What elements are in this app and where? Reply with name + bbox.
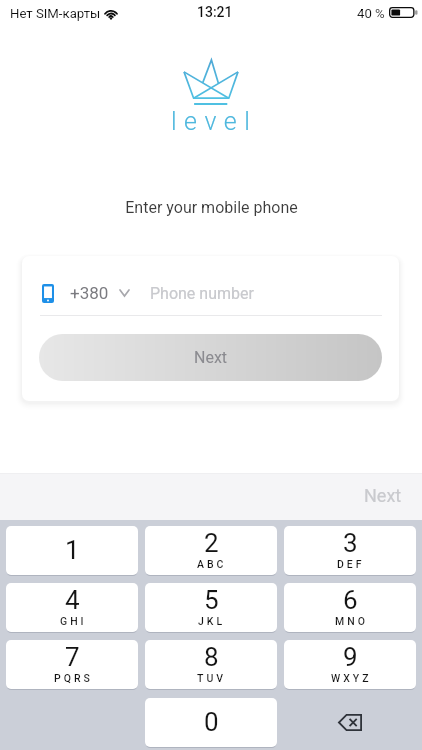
- button[interactable]: 0: [145, 698, 277, 747]
- staticText: TUV: [197, 672, 227, 684]
- button[interactable]: 2: [145, 526, 277, 575]
- staticText: Enter your mobile phone: [125, 198, 298, 217]
- staticText: Next: [194, 348, 228, 367]
- staticText: PQRS: [54, 672, 93, 684]
- staticText: 3: [343, 528, 358, 558]
- staticText: 9: [343, 642, 358, 672]
- button[interactable]: 1: [6, 526, 138, 575]
- staticText: 8: [204, 642, 219, 672]
- button[interactable]: Next: [39, 334, 382, 381]
- staticText: Phone number: [150, 284, 254, 303]
- button[interactable]: 5: [145, 583, 277, 632]
- staticText: 7: [65, 642, 80, 672]
- button[interactable]: 7: [6, 640, 138, 689]
- staticText: MNO: [335, 615, 368, 627]
- staticText: GHI: [60, 615, 87, 627]
- staticText: +380: [70, 283, 109, 303]
- button[interactable]: 6: [284, 583, 416, 632]
- staticText: 5: [204, 585, 219, 615]
- button[interactable]: Next: [364, 485, 402, 506]
- button[interactable]: 8: [145, 640, 277, 689]
- staticText: ABC: [197, 558, 227, 570]
- button[interactable]: 3: [284, 526, 416, 575]
- staticText: 13:21: [197, 4, 233, 20]
- button[interactable]: 4: [6, 583, 138, 632]
- staticText: level: [171, 107, 258, 136]
- staticText: 4: [65, 585, 80, 615]
- staticText: Next: [364, 485, 402, 506]
- button[interactable]: Delete: [284, 698, 416, 747]
- staticText: Нет SIM-карты: [10, 6, 101, 21]
- staticText: 6: [343, 585, 358, 615]
- button[interactable]: 9: [284, 640, 416, 689]
- staticText: 1: [65, 535, 80, 565]
- staticText: JKL: [198, 615, 226, 627]
- staticText: 0: [204, 707, 219, 737]
- staticText: 40 %: [357, 6, 385, 21]
- staticText: WXYZ: [331, 672, 372, 684]
- staticText: DEF: [337, 558, 365, 570]
- staticText: 2: [204, 528, 219, 558]
